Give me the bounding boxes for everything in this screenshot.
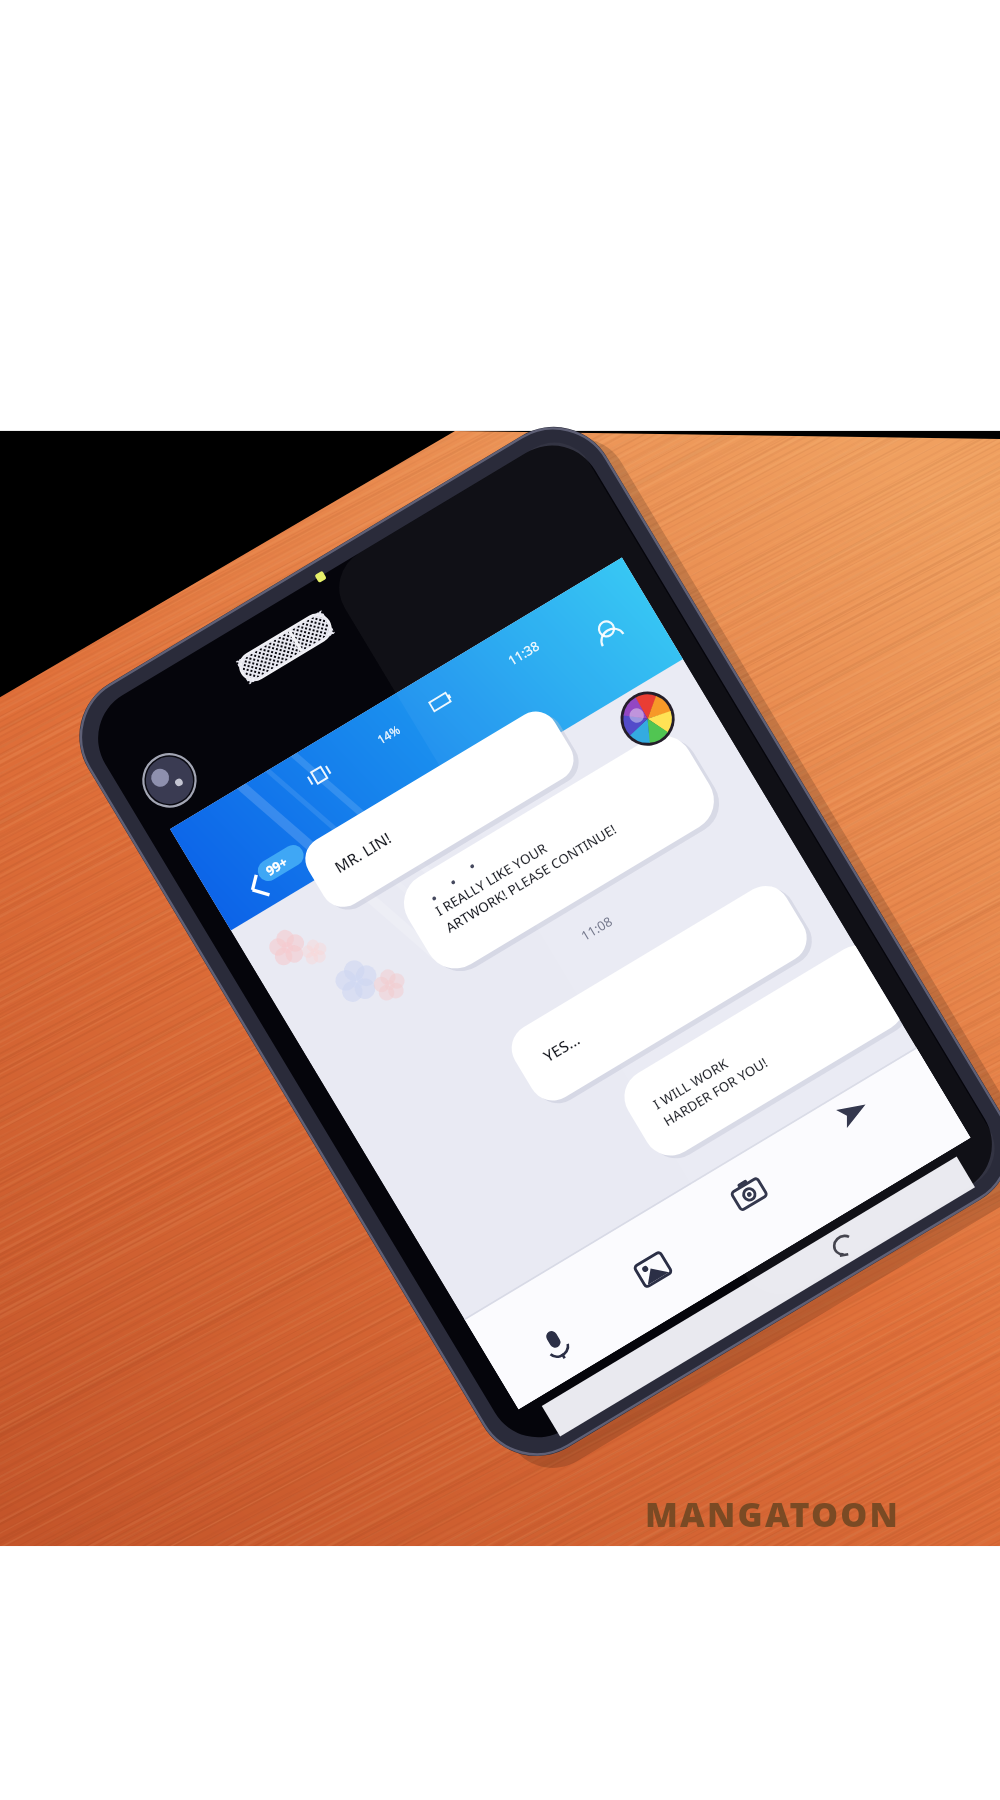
button[interactable]: Comic panel: phone on a desk showing a c… [0, 0, 1000, 1800]
